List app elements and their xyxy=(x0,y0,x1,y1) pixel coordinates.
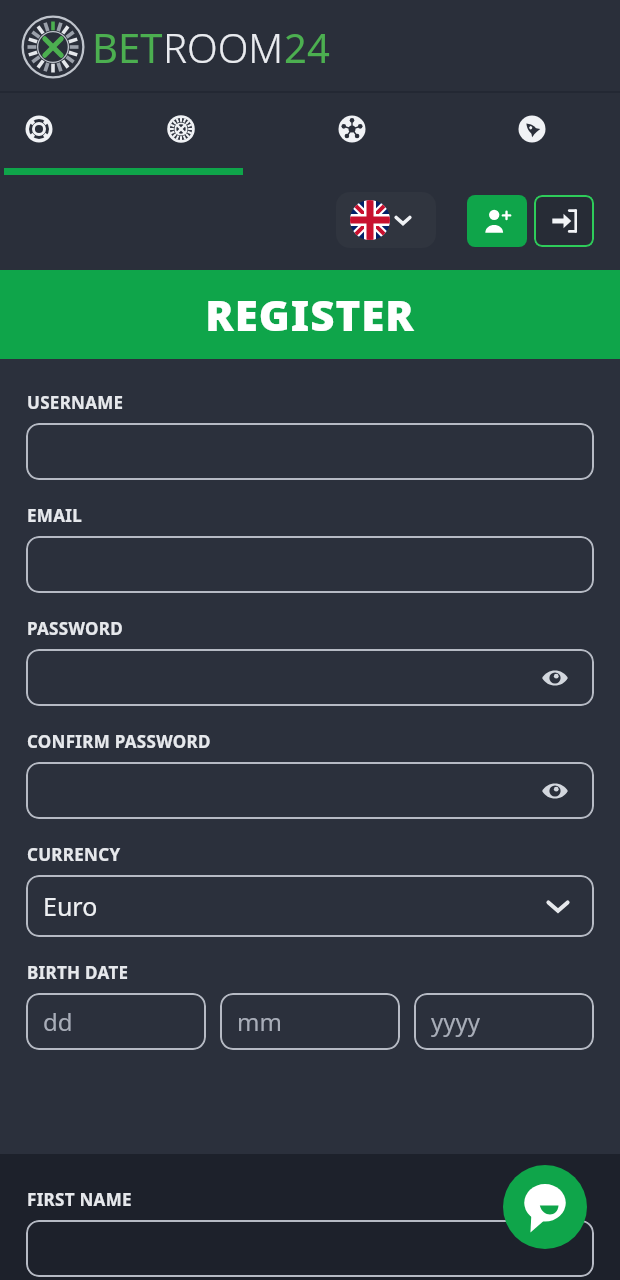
staticText: USERNAME xyxy=(27,391,124,414)
button[interactable]: Register xyxy=(467,195,527,247)
button[interactable]: BET xyxy=(20,14,330,80)
button[interactable]: Log in xyxy=(534,195,594,247)
staticText: BET xyxy=(92,20,163,74)
button[interactable]: Show password xyxy=(26,649,594,706)
button[interactable]: Select language xyxy=(336,192,436,248)
button[interactable]: Fast games xyxy=(498,93,566,165)
button[interactable]: REGISTER xyxy=(0,270,620,359)
button[interactable]: yyyy xyxy=(414,993,594,1050)
button[interactable] xyxy=(26,536,594,593)
staticText: PASSWORD xyxy=(27,617,123,640)
staticText: BIRTH DATE xyxy=(27,961,129,984)
staticText: dd xyxy=(43,1005,73,1038)
staticText: Euro xyxy=(43,889,98,923)
staticText: ROOM xyxy=(163,20,284,74)
button[interactable]: Live casino xyxy=(147,93,215,165)
button[interactable]: Show password xyxy=(540,663,570,693)
button[interactable]: mm xyxy=(220,993,400,1050)
button[interactable]: Open chat xyxy=(503,1165,587,1249)
button[interactable]: Show password xyxy=(26,762,594,819)
staticText: yyyy xyxy=(431,1005,480,1038)
button[interactable]: Show password xyxy=(540,776,570,806)
staticText: FIRST NAME xyxy=(27,1188,132,1211)
button[interactable]: Currency selector xyxy=(26,875,594,937)
staticText: CONFIRM PASSWORD xyxy=(27,730,211,753)
button[interactable]: dd xyxy=(26,993,206,1050)
staticText: REGISTER xyxy=(205,286,415,343)
staticText: EMAIL xyxy=(27,504,82,527)
button[interactable]: Sports xyxy=(318,93,386,165)
staticText: mm xyxy=(237,1005,282,1038)
button[interactable]: Casino xyxy=(5,93,73,165)
button[interactable] xyxy=(26,423,594,480)
staticText: 24 xyxy=(284,20,330,74)
staticText: CURRENCY xyxy=(27,843,121,866)
button[interactable] xyxy=(26,1220,594,1277)
